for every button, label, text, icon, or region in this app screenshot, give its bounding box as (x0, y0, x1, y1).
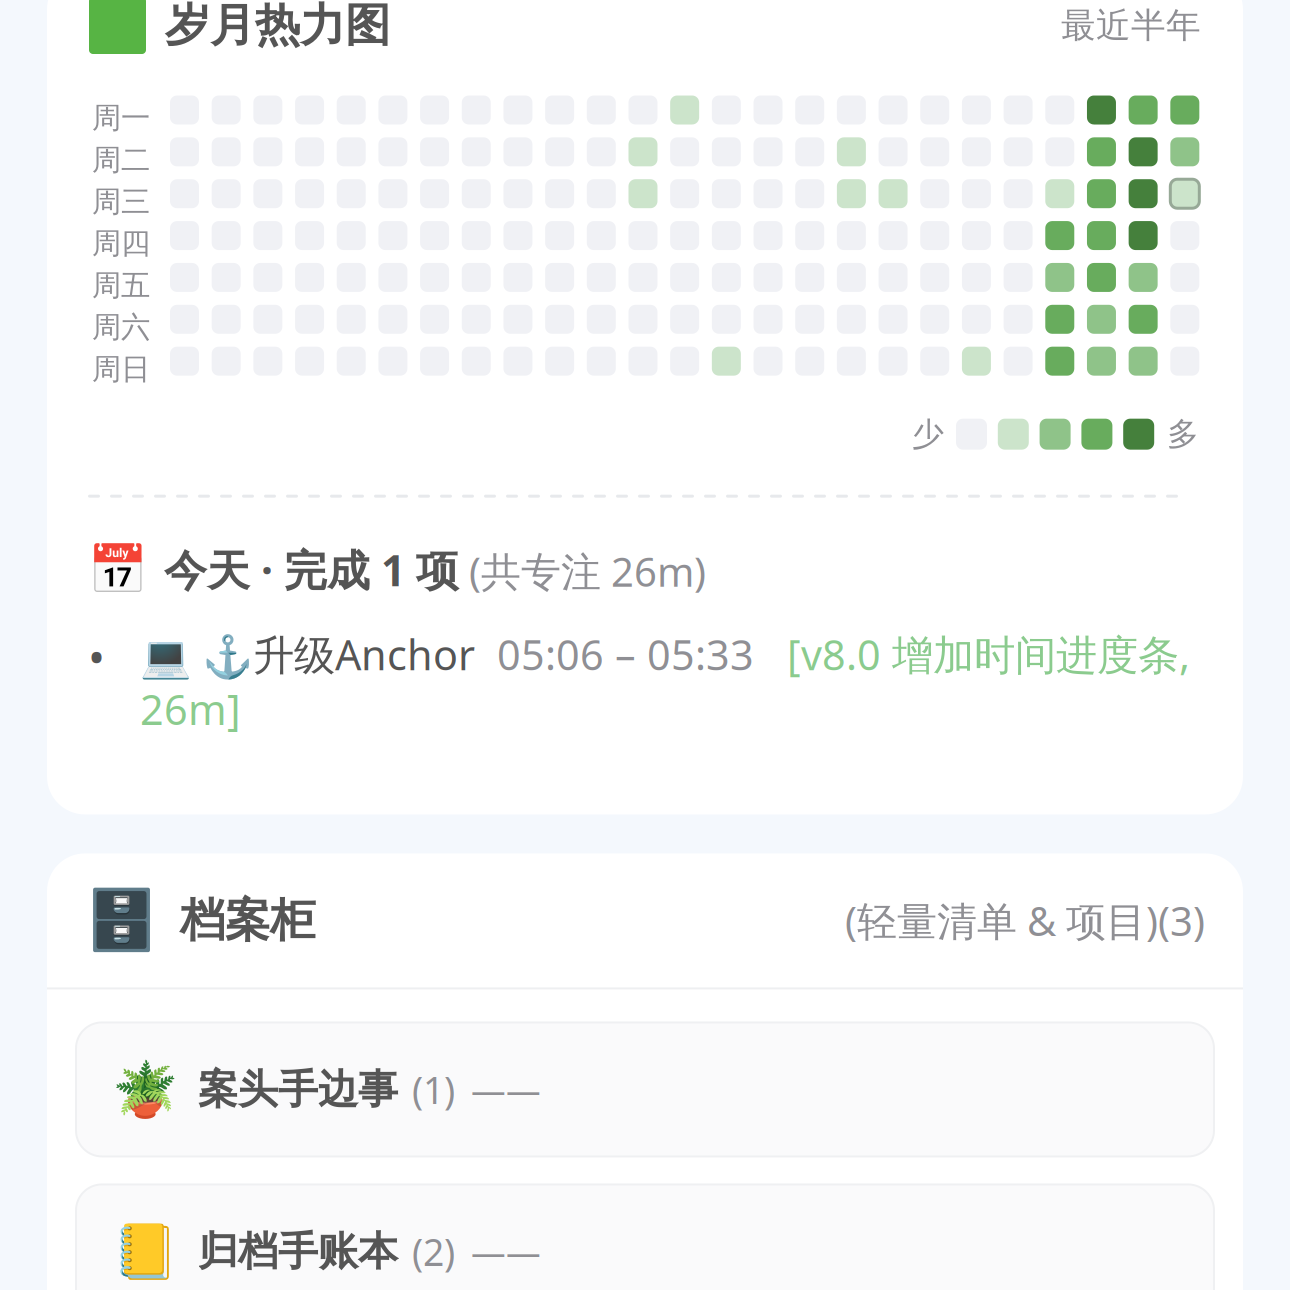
staticText: 档案柜 (180, 893, 315, 948)
staticText: 📅 (88, 542, 148, 597)
button[interactable]: 📒 (76, 1184, 1214, 1290)
staticText: 周日 (92, 351, 150, 387)
staticText: 📒 (112, 1221, 178, 1282)
staticText: (2) (412, 1227, 455, 1276)
staticText: 归档手账本 (198, 1227, 398, 1276)
staticText: 周五 (92, 267, 150, 303)
staticText: 案头手边事 (198, 1065, 398, 1114)
staticText: —— (471, 1228, 541, 1274)
staticText: 周四 (92, 226, 150, 262)
staticText: 💻 ⚓升级Anchor 05:06 – 05:33 [v8.0 增加时间进度条,… (140, 627, 1190, 736)
staticText: 多 (1167, 414, 1199, 454)
staticText: 周二 (92, 142, 150, 178)
staticText: (轻量清单 & 项目)(3) (845, 894, 1205, 947)
staticText: 🪴 (112, 1059, 178, 1120)
staticText: 周六 (92, 309, 150, 345)
staticText: 🗄️ (85, 887, 158, 954)
staticText: —— (471, 1066, 541, 1112)
staticText: (1) (412, 1065, 455, 1114)
staticText: 今天 · 完成 1 项 (共专注 26m) (164, 541, 706, 598)
staticText: 周一 (92, 100, 150, 136)
staticText: 少 (912, 414, 944, 454)
staticText: 岁月热力图 (165, 0, 390, 53)
staticText: 最近半年 (1061, 4, 1201, 47)
staticText: • (88, 627, 105, 687)
button[interactable]: 🪴 (76, 1022, 1214, 1156)
staticText: 周三 (92, 184, 150, 220)
